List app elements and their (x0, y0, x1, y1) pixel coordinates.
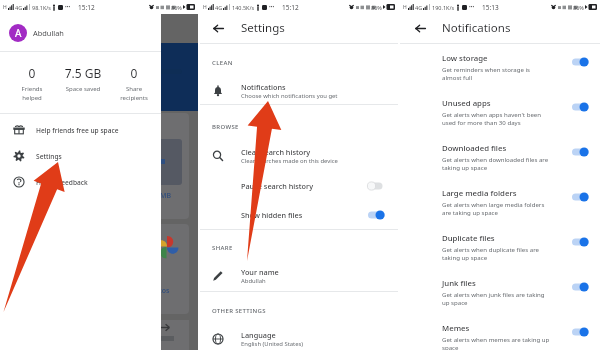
button[interactable]: Large media folders (400, 188, 600, 222)
staticText: OTHER SETTINGS (212, 307, 266, 315)
staticText: 86% (573, 4, 584, 11)
staticText: MB (160, 191, 172, 201)
staticText: 15:12 (282, 3, 299, 12)
button[interactable] (572, 102, 589, 112)
button[interactable]: Settings (0, 143, 161, 169)
staticText: English (United States) (241, 340, 304, 348)
button[interactable] (572, 282, 589, 292)
staticText: 4G (15, 4, 23, 11)
staticText: Pause search history (241, 181, 368, 191)
staticText: A (15, 26, 22, 40)
staticText: 4G (415, 4, 423, 11)
staticText: Get alerts when apps haven't been used f… (442, 110, 542, 126)
staticText: Settings (36, 152, 62, 161)
button[interactable]: Back (210, 20, 226, 36)
button[interactable]: Show hidden files (200, 208, 398, 221)
button[interactable]: Your name (200, 265, 398, 287)
button[interactable]: Help & feedback (0, 169, 161, 195)
button[interactable]: Junk files (400, 278, 600, 312)
staticText: Abdullah (33, 28, 64, 38)
staticText: 98.1K/s (32, 4, 51, 11)
staticText: Get alerts when large media folders are … (442, 200, 545, 216)
staticText: Notifications (241, 82, 286, 92)
staticText: ••• (269, 4, 275, 10)
staticText: H (403, 4, 407, 11)
staticText: Help friends free up space (36, 126, 119, 135)
button[interactable]: Pause search history (200, 179, 398, 192)
staticText: Clear search history (241, 147, 311, 157)
button[interactable]: Low storage (400, 53, 600, 87)
button[interactable] (368, 181, 385, 191)
staticText: Unused apps (442, 98, 491, 109)
staticText: Get alerts when memes are taking up spac… (442, 335, 550, 350)
staticText: Show hidden files (241, 210, 368, 220)
button[interactable] (572, 327, 589, 337)
staticText: 190.1K/s (432, 4, 455, 11)
staticText: H (203, 4, 207, 11)
staticText: CLEAN (212, 59, 233, 67)
staticText: Duplicate files (442, 233, 495, 244)
staticText: Get reminders when storage is almost ful… (442, 65, 530, 81)
staticText: Memes (442, 323, 470, 334)
staticText: Share recipients (110, 85, 158, 102)
staticText: ••• (469, 4, 475, 10)
staticText: Clear searches made on this device (241, 157, 338, 165)
staticText: Space saved (56, 85, 110, 93)
button[interactable]: Downloaded files (400, 143, 600, 177)
staticText: 140.5K/s (232, 4, 255, 11)
button[interactable]: Help friends free up space (0, 117, 161, 143)
staticText: BROWSE (212, 123, 239, 131)
staticText: 7.5 GB (56, 65, 110, 81)
staticText: Choose which notifications you get (241, 92, 338, 100)
button[interactable]: Language (200, 328, 398, 350)
staticText: tos (159, 286, 170, 296)
button[interactable] (572, 57, 589, 67)
staticText: Settings (241, 20, 285, 36)
button[interactable]: Notifications (200, 80, 398, 102)
staticText: Friends helped (8, 85, 56, 102)
button[interactable] (572, 237, 589, 247)
staticText: 86% (371, 4, 382, 11)
staticText: Abdullah (241, 277, 266, 285)
button[interactable]: Memes (400, 323, 600, 350)
button[interactable]: Unused apps (400, 98, 600, 132)
button[interactable]: A (0, 14, 161, 51)
button[interactable] (572, 192, 589, 202)
staticText: Get alerts when duplicate files are taki… (442, 245, 540, 261)
staticText: Notifications (442, 20, 511, 36)
staticText: Help & feedback (36, 178, 88, 187)
staticText: Large media folders (442, 188, 517, 199)
staticText: 15:13 (482, 3, 499, 12)
staticText: 15:12 (78, 3, 95, 12)
staticText: ••• (65, 4, 71, 10)
staticText: Your name (241, 267, 279, 277)
button[interactable] (572, 147, 589, 157)
staticText: H (3, 4, 7, 11)
staticText: 0 (8, 65, 56, 81)
button[interactable] (368, 210, 385, 220)
button[interactable]: Back (412, 20, 428, 36)
staticText: Downloaded files (442, 143, 507, 154)
staticText: Low storage (442, 53, 488, 64)
staticText: Language (241, 330, 276, 340)
button[interactable]: Clear search history (200, 145, 398, 167)
staticText: 86% (171, 4, 182, 11)
staticText: Junk files (442, 278, 476, 289)
staticText: SHARE (212, 244, 233, 252)
staticText: Get alerts when downloaded files are tak… (442, 155, 549, 171)
button[interactable]: Duplicate files (400, 233, 600, 267)
staticText: Get alerts when junk files are taking up… (442, 290, 545, 306)
staticText: 0 (110, 65, 158, 81)
staticText: 4G (215, 4, 223, 11)
